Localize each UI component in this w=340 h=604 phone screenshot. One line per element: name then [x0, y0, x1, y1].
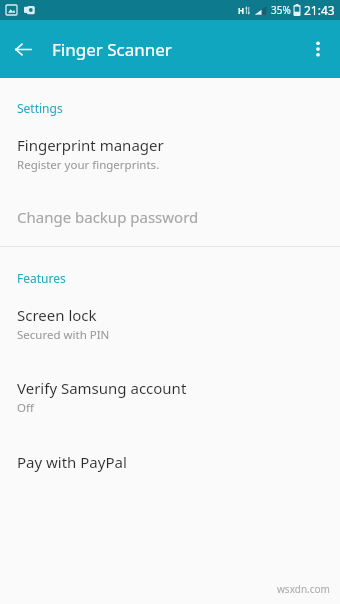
staticText: 21:43	[304, 2, 335, 18]
staticText: Pay with PayPal	[17, 452, 127, 472]
staticText: Features	[17, 270, 66, 286]
staticText: Screen lock	[17, 305, 97, 325]
button[interactable]: Change backup password	[0, 207, 340, 227]
staticText: Fingerprint manager	[17, 135, 164, 155]
staticText: 35%	[271, 3, 291, 17]
button[interactable]: Screen lock	[0, 305, 340, 343]
button[interactable]: Back	[0, 26, 46, 72]
staticText: H	[238, 5, 245, 16]
staticText: Finger Scanner	[52, 38, 172, 61]
button[interactable]: Pay with PayPal	[0, 452, 340, 472]
button[interactable]: Verify Samsung account	[0, 378, 340, 416]
staticText: Settings	[17, 100, 63, 116]
staticText: Secured with PIN	[17, 327, 110, 343]
staticText: Change backup password	[17, 207, 199, 227]
staticText: wsxdn.com	[277, 582, 330, 596]
button[interactable]: More options	[296, 27, 340, 71]
staticText: Off	[17, 400, 34, 416]
button[interactable]: Fingerprint manager	[0, 135, 340, 173]
staticText: Verify Samsung account	[17, 378, 187, 398]
staticText: Register your fingerprints.	[17, 157, 160, 173]
